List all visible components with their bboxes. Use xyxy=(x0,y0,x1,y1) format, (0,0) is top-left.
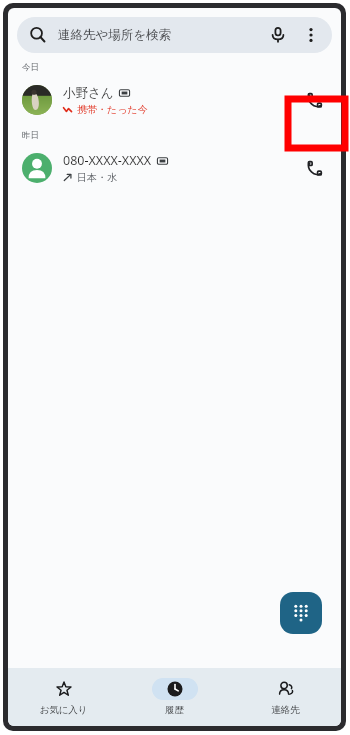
staticText: 携帯・たった今 xyxy=(77,103,148,116)
staticText: お気に入り xyxy=(39,704,88,716)
staticText: 080-XXXX-XXXX xyxy=(63,152,152,169)
button[interactable]: Call xyxy=(292,78,336,122)
other: Search xyxy=(29,26,47,44)
button[interactable]: 080-XXXX-XXXX xyxy=(8,144,341,192)
staticText: 連絡先や場所を検索 xyxy=(58,27,172,43)
button[interactable]: 小野さん xyxy=(8,76,341,124)
staticText: 昨日 xyxy=(22,130,39,141)
staticText: 小野さん xyxy=(63,85,114,101)
staticText: 連絡先 xyxy=(271,704,300,716)
button[interactable]: Dialpad xyxy=(280,592,322,634)
button[interactable]: お気に入り xyxy=(8,668,119,726)
button[interactable]: 連絡先 xyxy=(230,668,341,726)
button[interactable]: Voice search xyxy=(268,25,288,45)
button[interactable]: 履歴 xyxy=(119,668,230,726)
staticText: 日本・水 xyxy=(77,171,117,184)
button[interactable]: More options xyxy=(302,26,320,44)
staticText: 今日 xyxy=(22,62,39,73)
button[interactable]: Call xyxy=(292,146,336,190)
button[interactable]: Search xyxy=(17,17,332,53)
staticText: 履歴 xyxy=(165,704,184,716)
